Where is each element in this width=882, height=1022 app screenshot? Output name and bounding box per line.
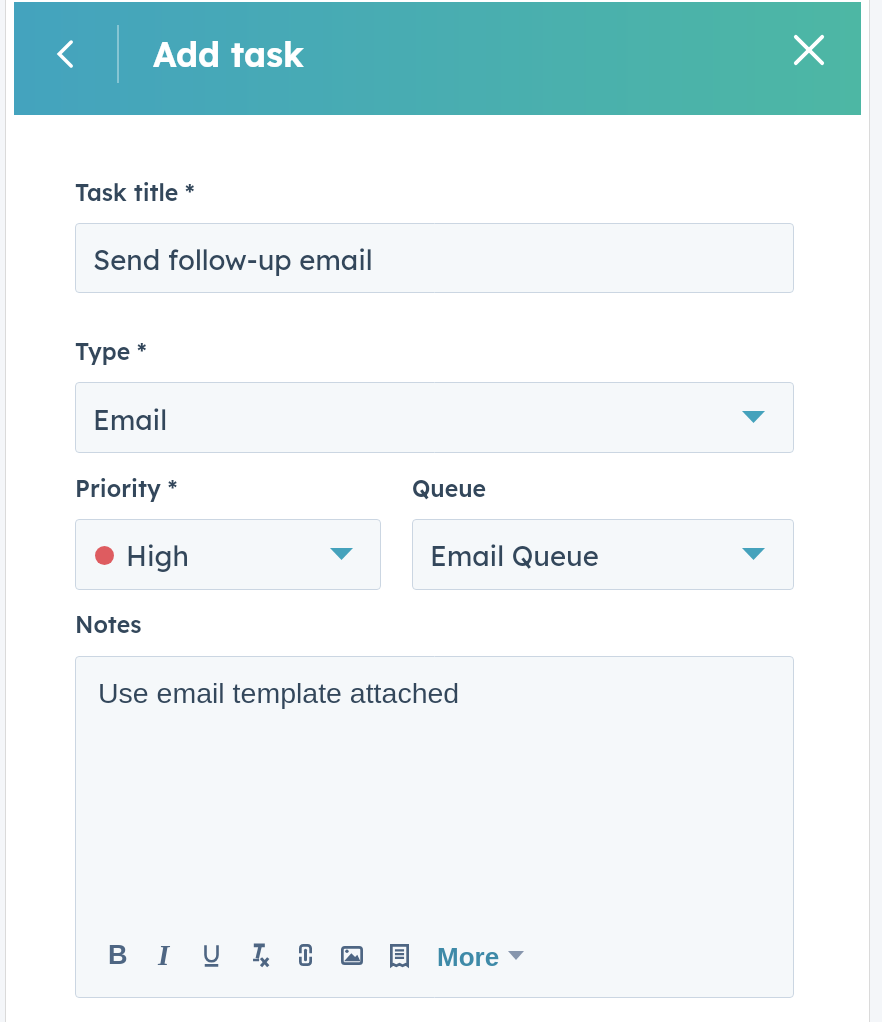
button[interactable]: Email: [75, 382, 794, 453]
staticText: Priority *: [75, 474, 178, 503]
staticText: Queue: [412, 474, 486, 503]
button[interactable]: Send follow-up email: [75, 223, 794, 293]
staticText: Task title *: [75, 178, 195, 207]
button[interactable]: Attach link: [287, 937, 323, 973]
staticText: Email Queue: [430, 538, 599, 572]
button[interactable]: Insert image: [334, 937, 370, 973]
staticText: Type *: [75, 337, 147, 366]
button[interactable]: High: [75, 519, 381, 590]
staticText: I: [158, 939, 170, 971]
button[interactable]: More: [427, 933, 535, 977]
button[interactable]: Email Queue: [412, 519, 794, 590]
staticText: High: [126, 538, 189, 572]
button[interactable]: Underline: [193, 937, 229, 973]
staticText: Email: [93, 402, 168, 436]
button[interactable]: Italic: [146, 937, 182, 973]
button[interactable]: Clear formatting: [241, 937, 277, 973]
staticText: Send follow-up email: [93, 242, 373, 276]
button[interactable]: Back: [40, 30, 88, 78]
staticText: Use email template attached: [98, 677, 460, 709]
staticText: Notes: [75, 610, 142, 639]
staticText: More: [437, 942, 500, 971]
button[interactable]: Use email template attached: [75, 656, 794, 998]
button[interactable]: Bold: [100, 937, 136, 973]
button[interactable]: Insert document: [381, 937, 417, 973]
staticText: B: [108, 940, 128, 970]
staticText: Add task: [153, 33, 304, 76]
button[interactable]: Close: [783, 24, 835, 76]
